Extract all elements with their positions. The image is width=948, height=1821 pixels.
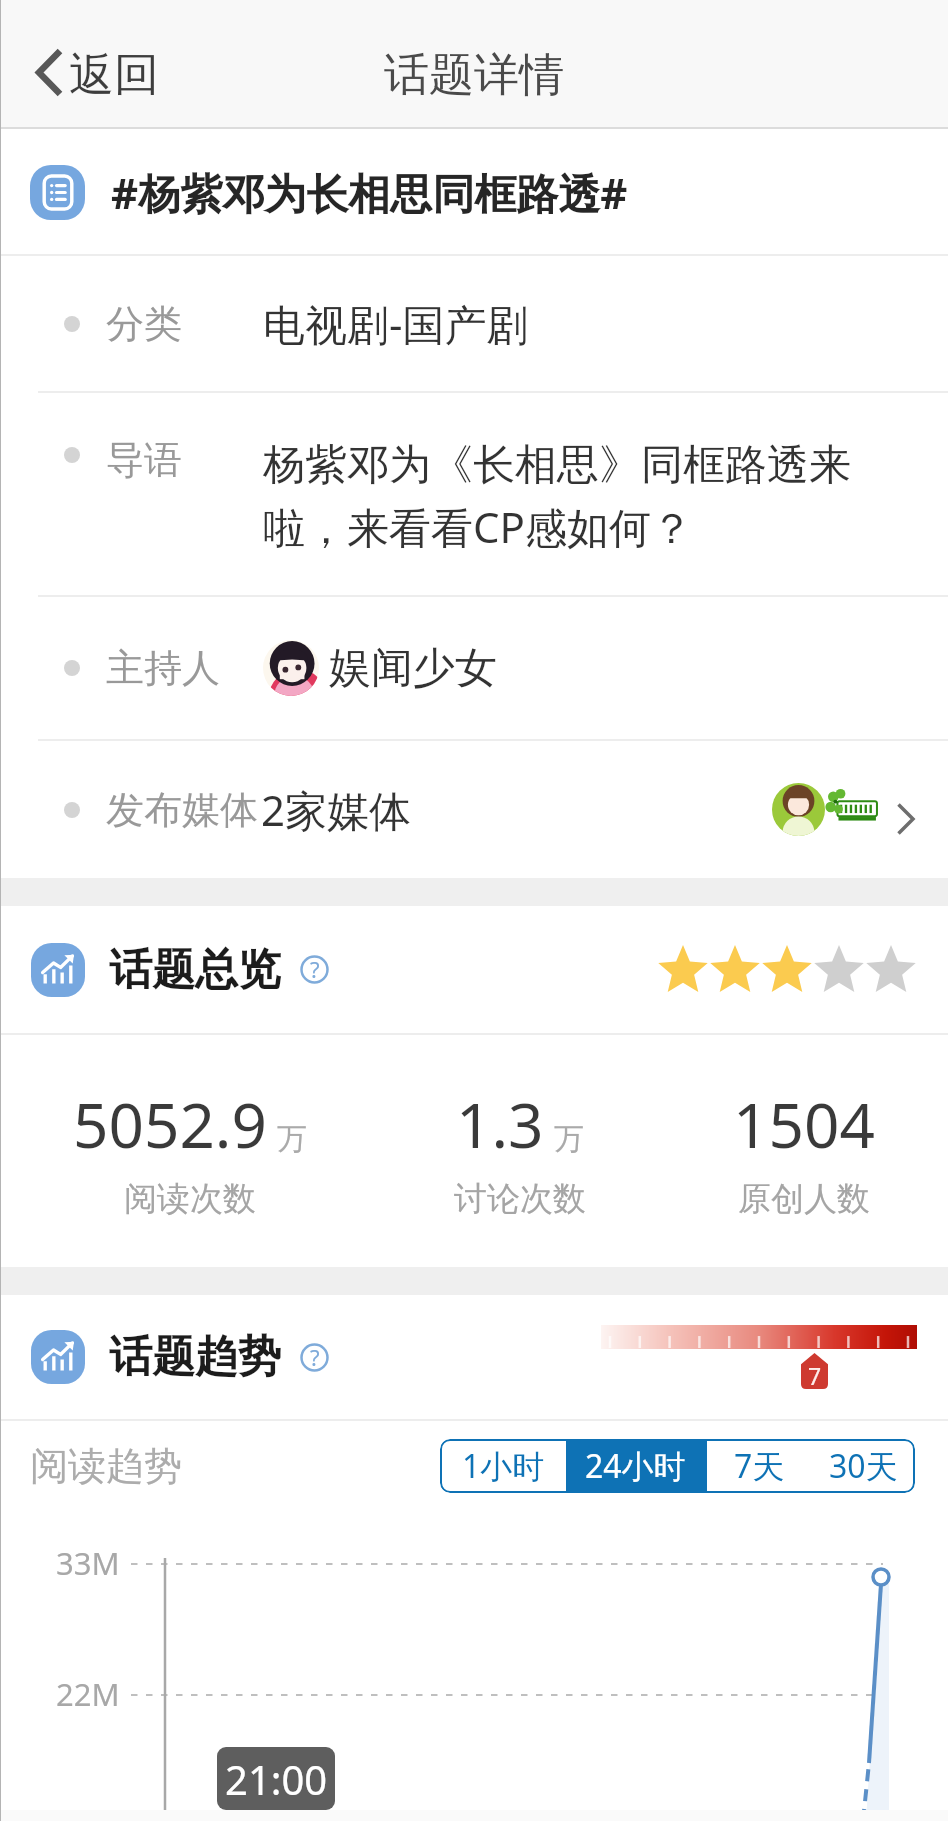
button[interactable]: 1小时: [440, 1439, 566, 1493]
button[interactable]: 5052.9: [63, 1076, 317, 1226]
staticText: 7: [808, 1360, 822, 1391]
staticText: 21:00: [225, 1752, 328, 1806]
staticText: 话题详情: [384, 47, 564, 104]
staticText: 1.3: [456, 1082, 544, 1166]
other: 查看媒体: [897, 803, 915, 835]
button[interactable]: 热度评分: [657, 944, 917, 996]
button[interactable]: 1.3: [444, 1076, 596, 1226]
staticText: 话题趋势: [109, 1330, 281, 1384]
button[interactable]: 返回: [0, 0, 183, 129]
staticText: 5052.9: [73, 1082, 267, 1166]
staticText: 1小时: [462, 1444, 545, 1488]
staticText: 返回: [69, 47, 159, 104]
staticText: 7天: [734, 1444, 785, 1488]
staticText: 万: [277, 1120, 307, 1158]
staticText: #杨紫邓为长相思同框路透#: [111, 164, 628, 221]
button[interactable]: 1504: [723, 1076, 885, 1226]
staticText: 导语: [106, 436, 182, 484]
button[interactable]: #杨紫邓为长相思同框路透#: [0, 129, 948, 256]
staticText: 发布媒体: [106, 786, 258, 834]
staticText: 阅读趋势: [30, 1442, 182, 1490]
button[interactable]: 7天: [707, 1439, 811, 1493]
staticText: 2家媒体: [261, 781, 412, 838]
staticText: 电视剧-国产剧: [263, 295, 529, 352]
staticText: 24小时: [585, 1444, 686, 1488]
staticText: 33M: [56, 1542, 120, 1584]
staticText: 杨紫邓为《长相思》同框路透来 啦，来看看CP感如何？: [263, 439, 851, 555]
button[interactable]: 说明: [300, 955, 329, 984]
staticText: 1504: [733, 1082, 875, 1166]
staticText: ?: [310, 954, 320, 983]
staticText: 万: [554, 1120, 584, 1158]
button[interactable]: 24小时: [566, 1439, 705, 1493]
button[interactable]: 发布媒体: [0, 741, 948, 878]
staticText: 22M: [56, 1673, 120, 1715]
staticText: 阅读次数: [124, 1178, 256, 1220]
staticText: ?: [310, 1342, 320, 1371]
staticText: 讨论次数: [454, 1178, 586, 1220]
staticText: 分类: [106, 300, 182, 348]
staticText: 原创人数: [738, 1178, 870, 1220]
button[interactable]: 30天: [811, 1439, 915, 1493]
staticText: 主持人: [106, 644, 220, 692]
staticText: 娱闻少女: [329, 642, 497, 695]
staticText: 话题总览: [109, 943, 281, 997]
button[interactable]: 说明: [300, 1343, 329, 1372]
staticText: 30天: [829, 1444, 898, 1488]
